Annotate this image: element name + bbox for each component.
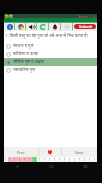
button[interactable]: 1 bbox=[12, 157, 17, 162]
staticText: 1 bbox=[54, 158, 56, 162]
staticText: 1 bbox=[39, 158, 41, 162]
button[interactable]: 1 bbox=[52, 157, 57, 162]
staticText: 1 bbox=[49, 158, 51, 162]
button[interactable]: 1 bbox=[4, 157, 8, 162]
button[interactable]: 1 bbox=[72, 157, 77, 162]
staticText: भौतिक गुण व लक्षण bbox=[13, 59, 44, 65]
button[interactable]: 1 bbox=[37, 157, 42, 162]
staticText: 1 bbox=[79, 158, 81, 162]
staticText: संरचना व गुण bbox=[13, 43, 34, 49]
button[interactable]: Recents bbox=[68, 162, 102, 183]
button[interactable]: 1 bbox=[32, 157, 37, 162]
button[interactable]: कोशिका व उतक bbox=[4, 50, 97, 58]
button[interactable]: संरचना व गुण bbox=[4, 42, 97, 50]
button[interactable]: 1 bbox=[42, 157, 47, 162]
button[interactable]: Prev bbox=[4, 147, 38, 157]
staticText: 1. किसी वस्तु का वह गुण जो उसे अन्य से भ… bbox=[5, 33, 89, 39]
button[interactable]: 1 bbox=[8, 157, 12, 162]
button[interactable]: 1 bbox=[47, 157, 52, 162]
button[interactable]: Favourite bbox=[39, 147, 61, 157]
button[interactable]: 1 bbox=[22, 157, 27, 162]
staticText: 1 bbox=[59, 158, 61, 162]
staticText: Next bbox=[75, 150, 84, 155]
staticText: 1 bbox=[94, 158, 96, 162]
staticText: 1 bbox=[34, 158, 36, 162]
button[interactable]: भौतिक गुण व लक्षण bbox=[4, 58, 97, 66]
button[interactable]: Sound bbox=[26, 22, 37, 31]
staticText: 1 bbox=[14, 158, 16, 162]
staticText: 1 bbox=[69, 158, 71, 162]
button[interactable]: 1 bbox=[77, 157, 82, 162]
staticText: 1 bbox=[19, 158, 21, 162]
button[interactable]: 1 bbox=[17, 157, 22, 162]
button[interactable]: 1 bbox=[92, 157, 97, 162]
staticText: 1 bbox=[44, 158, 46, 162]
staticText: Prev bbox=[17, 150, 25, 155]
staticText: विज्ञान bbox=[5, 18, 13, 22]
button[interactable]: रासायनिक गुण bbox=[4, 66, 97, 74]
button[interactable]: Refresh bbox=[37, 22, 49, 31]
button[interactable]: 1 bbox=[57, 157, 62, 162]
staticText: Score 1.0 bbox=[78, 14, 96, 18]
button[interactable]: 1 bbox=[67, 157, 72, 162]
button[interactable]: 1 bbox=[27, 157, 32, 162]
staticText: रासायनिक गुण bbox=[13, 67, 36, 73]
button[interactable]: 1 bbox=[62, 157, 67, 162]
button[interactable]: Home bbox=[34, 162, 68, 183]
button[interactable]: Colours bbox=[15, 22, 26, 31]
staticText: 1 bbox=[64, 158, 66, 162]
staticText: 1 bbox=[9, 158, 11, 162]
staticText: 1 bbox=[5, 158, 7, 162]
button[interactable]: Next bbox=[62, 147, 97, 157]
button[interactable]: More options bbox=[61, 22, 73, 31]
button[interactable]: Submit bbox=[74, 24, 96, 29]
staticText: 1 bbox=[24, 158, 26, 162]
staticText: 1 bbox=[84, 158, 86, 162]
staticText: 1 bbox=[74, 158, 76, 162]
button[interactable]: 1 bbox=[82, 157, 87, 162]
button[interactable]: 1 bbox=[87, 157, 92, 162]
button[interactable]: Report bug bbox=[49, 22, 61, 31]
staticText: 1 bbox=[29, 158, 31, 162]
staticText: कोशिका व उतक bbox=[13, 51, 38, 57]
button[interactable]: Information bbox=[4, 22, 15, 31]
staticText: Submit bbox=[79, 24, 92, 29]
staticText: हिन्दी bbox=[5, 14, 13, 18]
staticText: 1 bbox=[89, 158, 91, 162]
